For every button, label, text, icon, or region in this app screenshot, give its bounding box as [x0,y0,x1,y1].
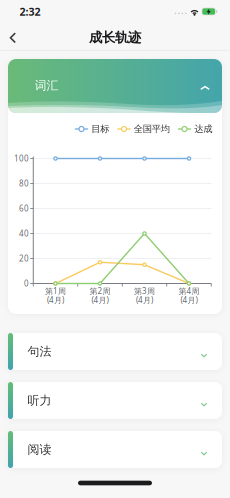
button[interactable]: 听力 [8,382,222,419]
staticText: 40 [19,228,29,239]
staticText: 第3周 [134,286,155,296]
staticText: (4月) [91,295,108,305]
staticText: 第4周 [178,286,199,296]
staticText: (4月) [47,295,64,305]
button[interactable] [4,26,24,48]
staticText: 目标 [91,123,109,135]
staticText: 20 [19,253,29,264]
button[interactable]: 词汇 [8,59,222,113]
staticText: 第2周 [89,286,110,296]
staticText: 达成 [194,123,212,135]
staticText: 成长轨迹 [89,29,141,46]
button[interactable]: 阅读 [8,431,222,468]
staticText: 60 [19,203,29,214]
staticText: 阅读 [27,442,51,457]
staticText: (4月) [136,295,153,305]
staticText: 全国平均 [134,123,170,135]
staticText: (4月) [180,295,197,305]
staticText: 100 [14,153,29,164]
staticText: 80 [19,178,29,189]
staticText: 2:32 [19,4,40,19]
staticText: 词汇 [34,78,58,93]
button[interactable]: 句法 [8,333,222,370]
staticText: 第1周 [45,286,66,296]
staticText: 听力 [27,393,51,408]
staticText: 0 [24,278,29,289]
staticText: 句法 [27,344,51,359]
